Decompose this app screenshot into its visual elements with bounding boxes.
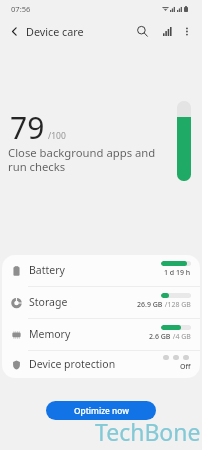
staticText: 26.9 GB [137,300,163,310]
staticText: Close background apps and run checks [8,145,156,174]
staticText: Memory [29,327,71,341]
button[interactable]: Device protection [2,351,200,378]
staticText: Off [180,362,191,372]
staticText: /128 GB [163,300,191,310]
button[interactable]: Storage [2,287,200,318]
button[interactable]: Usage statistics [157,21,177,41]
staticText: /4 GB [171,332,191,342]
staticText: 07:56 [11,4,31,14]
staticText: Device protection [29,357,116,371]
staticText: 79 [10,107,45,148]
button[interactable]: Optimize now [46,401,156,420]
staticText: Storage [29,295,68,309]
staticText: Battery [29,263,65,277]
button[interactable]: Memory [2,319,200,350]
staticText: Optimize now [74,405,129,416]
button[interactable]: More options [177,21,197,41]
button[interactable]: Battery [2,255,200,286]
button[interactable]: Search [132,21,152,41]
staticText: Device care [26,24,84,39]
staticText: 1 d 19 h [164,268,191,278]
staticText: /100 [48,130,66,142]
staticText: TechBone [95,416,201,447]
button[interactable]: Back [4,21,24,41]
staticText: 2.6 GB [149,332,171,342]
